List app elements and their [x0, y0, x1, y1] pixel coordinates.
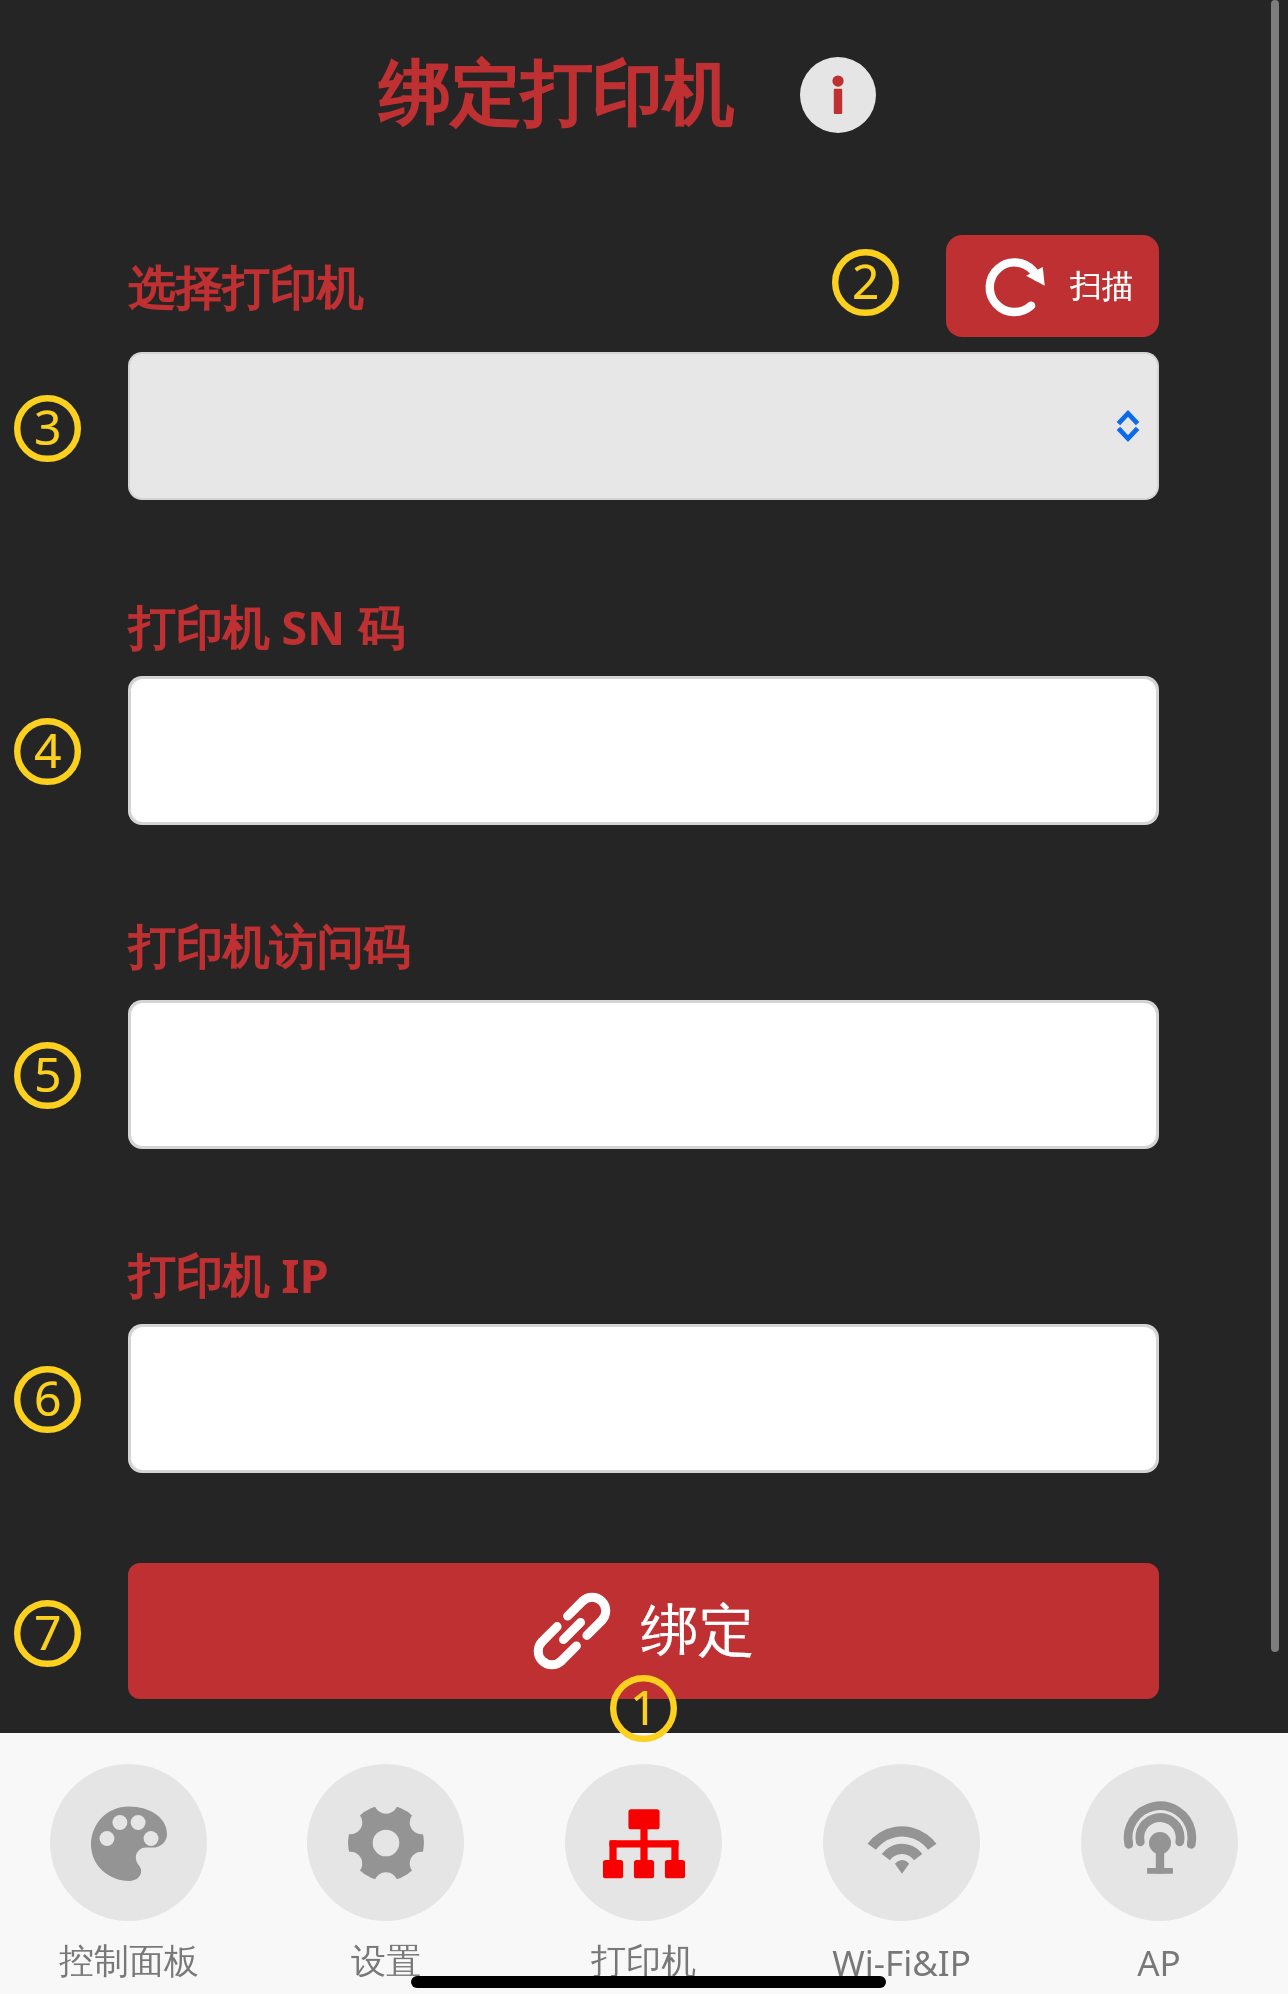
button[interactable]: 控制面板	[0, 1733, 257, 1994]
staticText: 6	[34, 1365, 62, 1430]
staticText: 绑定打印机	[378, 51, 733, 140]
button[interactable]: Info	[800, 57, 876, 133]
staticText: 设置	[351, 1939, 421, 1983]
staticText: 打印机 SN 码	[128, 595, 405, 659]
button[interactable]: 选择打印机	[130, 354, 1157, 498]
button[interactable]: AP	[1030, 1733, 1288, 1994]
staticText: 5	[34, 1041, 62, 1106]
button[interactable]: 绑定	[128, 1563, 1159, 1699]
staticText: 3	[34, 394, 62, 459]
staticText: 4	[34, 717, 62, 782]
staticText: 扫描	[1070, 266, 1134, 306]
staticText: 打印机	[591, 1939, 696, 1983]
staticText: 1	[630, 1674, 658, 1739]
staticText: Wi-Fi&IP	[832, 1939, 971, 1987]
staticText: 打印机访问码	[128, 919, 410, 978]
button[interactable]: 打印机	[514, 1733, 772, 1994]
staticText: 2	[852, 248, 880, 313]
staticText: AP	[1137, 1939, 1181, 1987]
button[interactable]: 设置	[257, 1733, 514, 1994]
staticText: 7	[34, 1599, 62, 1664]
staticText: 选择打印机	[128, 260, 363, 319]
button[interactable]: Wi-Fi&IP	[772, 1733, 1030, 1994]
button[interactable]: 扫描	[946, 235, 1159, 337]
staticText: 打印机 IP	[128, 1243, 329, 1307]
staticText: 绑定	[641, 1595, 755, 1667]
staticText: 控制面板	[59, 1939, 199, 1983]
